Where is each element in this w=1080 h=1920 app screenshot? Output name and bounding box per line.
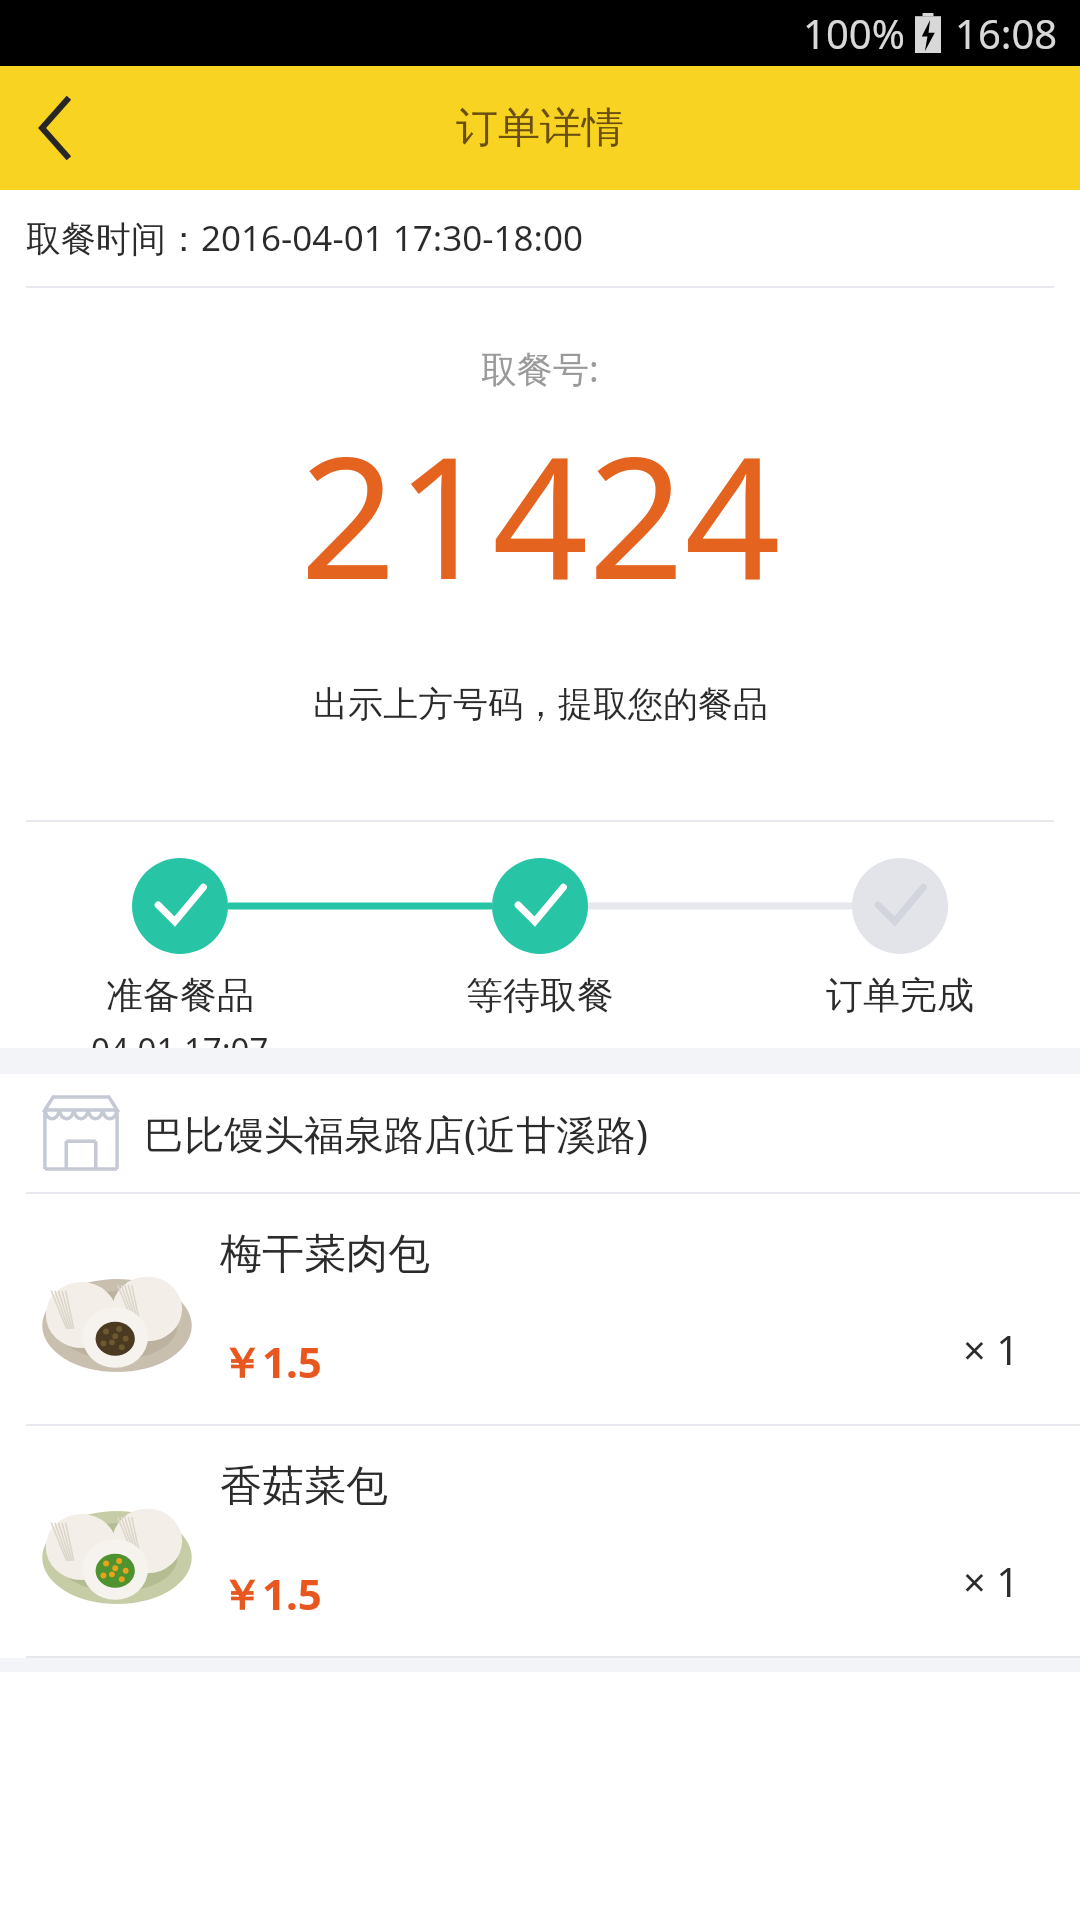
staticText: 香菇菜包 [220, 1460, 388, 1513]
staticText: × 1 [963, 1322, 1020, 1376]
staticText: 准备餐品 [106, 972, 254, 1019]
staticText: 04.01 17:07 [91, 1027, 269, 1048]
staticText: ￥1.5 [220, 1333, 322, 1390]
staticText: 订单完成 [826, 972, 974, 1019]
staticText: 订单详情 [456, 102, 624, 155]
button[interactable]: 香菇菜包 [0, 1426, 1080, 1656]
staticText: × 1 [963, 1554, 1020, 1608]
button[interactable]: 巴比馒头福泉路店(近甘溪路) [0, 1074, 1080, 1192]
staticText: 21424 [300, 399, 781, 628]
staticText: ￥1.5 [220, 1565, 322, 1622]
staticText: 取餐时间：2016-04-01 17:30-18:00 [26, 214, 583, 262]
staticText: 梅干菜肉包 [220, 1228, 430, 1281]
staticText: 等待取餐 [466, 972, 614, 1019]
staticText: 巴比馒头福泉路店(近甘溪路) [144, 1106, 648, 1161]
staticText: 出示上方号码，提取您的餐品 [313, 682, 768, 726]
button[interactable]: 梅干菜肉包 [0, 1194, 1080, 1424]
staticText: 16:08 [955, 6, 1058, 60]
button[interactable]: Back [0, 66, 110, 190]
staticText: 取餐号: [481, 344, 599, 393]
staticText: 100% [803, 6, 905, 60]
